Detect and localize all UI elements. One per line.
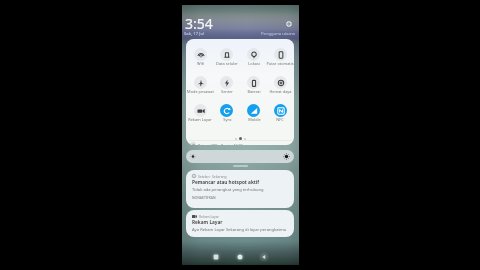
button[interactable]: Recents <box>210 251 222 263</box>
button[interactable] <box>247 104 260 117</box>
staticText: 3:54 <box>185 14 213 33</box>
staticText: Lokasi <box>248 61 260 66</box>
staticText: Sab, 17 Jul <box>184 31 205 37</box>
staticText: Baterai 38% · Tersisa 12:00 <box>198 143 243 145</box>
staticText: Tidak ada perangkat yang terhubung <box>192 187 264 193</box>
button[interactable]: Home <box>234 251 246 263</box>
button[interactable] <box>186 150 294 163</box>
button[interactable]: Settings <box>284 19 293 28</box>
staticText: Mode pesawat <box>187 89 214 94</box>
staticText: Rekam Layar <box>188 117 212 122</box>
button[interactable] <box>274 76 287 89</box>
button[interactable] <box>247 48 260 61</box>
staticText: Rekam Layar <box>192 219 223 225</box>
staticText: Sync <box>223 117 232 122</box>
button[interactable] <box>274 104 287 117</box>
button[interactable] <box>220 104 233 117</box>
button[interactable] <box>194 48 207 61</box>
staticText: NFC <box>276 117 284 122</box>
button[interactable] <box>220 76 233 89</box>
staticText: Data seluler <box>216 61 238 66</box>
staticText: NONAKTIFKAN <box>192 195 216 199</box>
staticText: Ayo Rekam Layar Sekarang di layar perang… <box>192 227 287 233</box>
staticText: Setelan · Sekarang <box>198 174 227 178</box>
button[interactable]: NONAKTIFKAN <box>192 195 216 199</box>
staticText: Pemancar atau hotspot aktif <box>192 179 260 185</box>
button[interactable] <box>247 76 260 89</box>
button[interactable] <box>194 104 207 117</box>
button[interactable] <box>220 48 233 61</box>
button[interactable] <box>194 76 207 89</box>
staticText: Rekam Layar <box>199 214 219 218</box>
button[interactable]: Setelan · Sekarang <box>186 170 294 208</box>
staticText: Mobile <box>248 117 261 122</box>
staticText: Hemat daya <box>269 89 292 94</box>
button[interactable] <box>274 48 287 61</box>
staticText: Putar otomatis <box>266 61 294 66</box>
staticText: Baterai <box>247 89 261 94</box>
staticText: Senter <box>221 89 233 94</box>
staticText: Wifi <box>197 61 204 66</box>
button[interactable]: Back <box>258 251 270 263</box>
button[interactable]: Rekam Layar <box>186 210 294 237</box>
staticText: Pengguna utama <box>261 31 295 37</box>
